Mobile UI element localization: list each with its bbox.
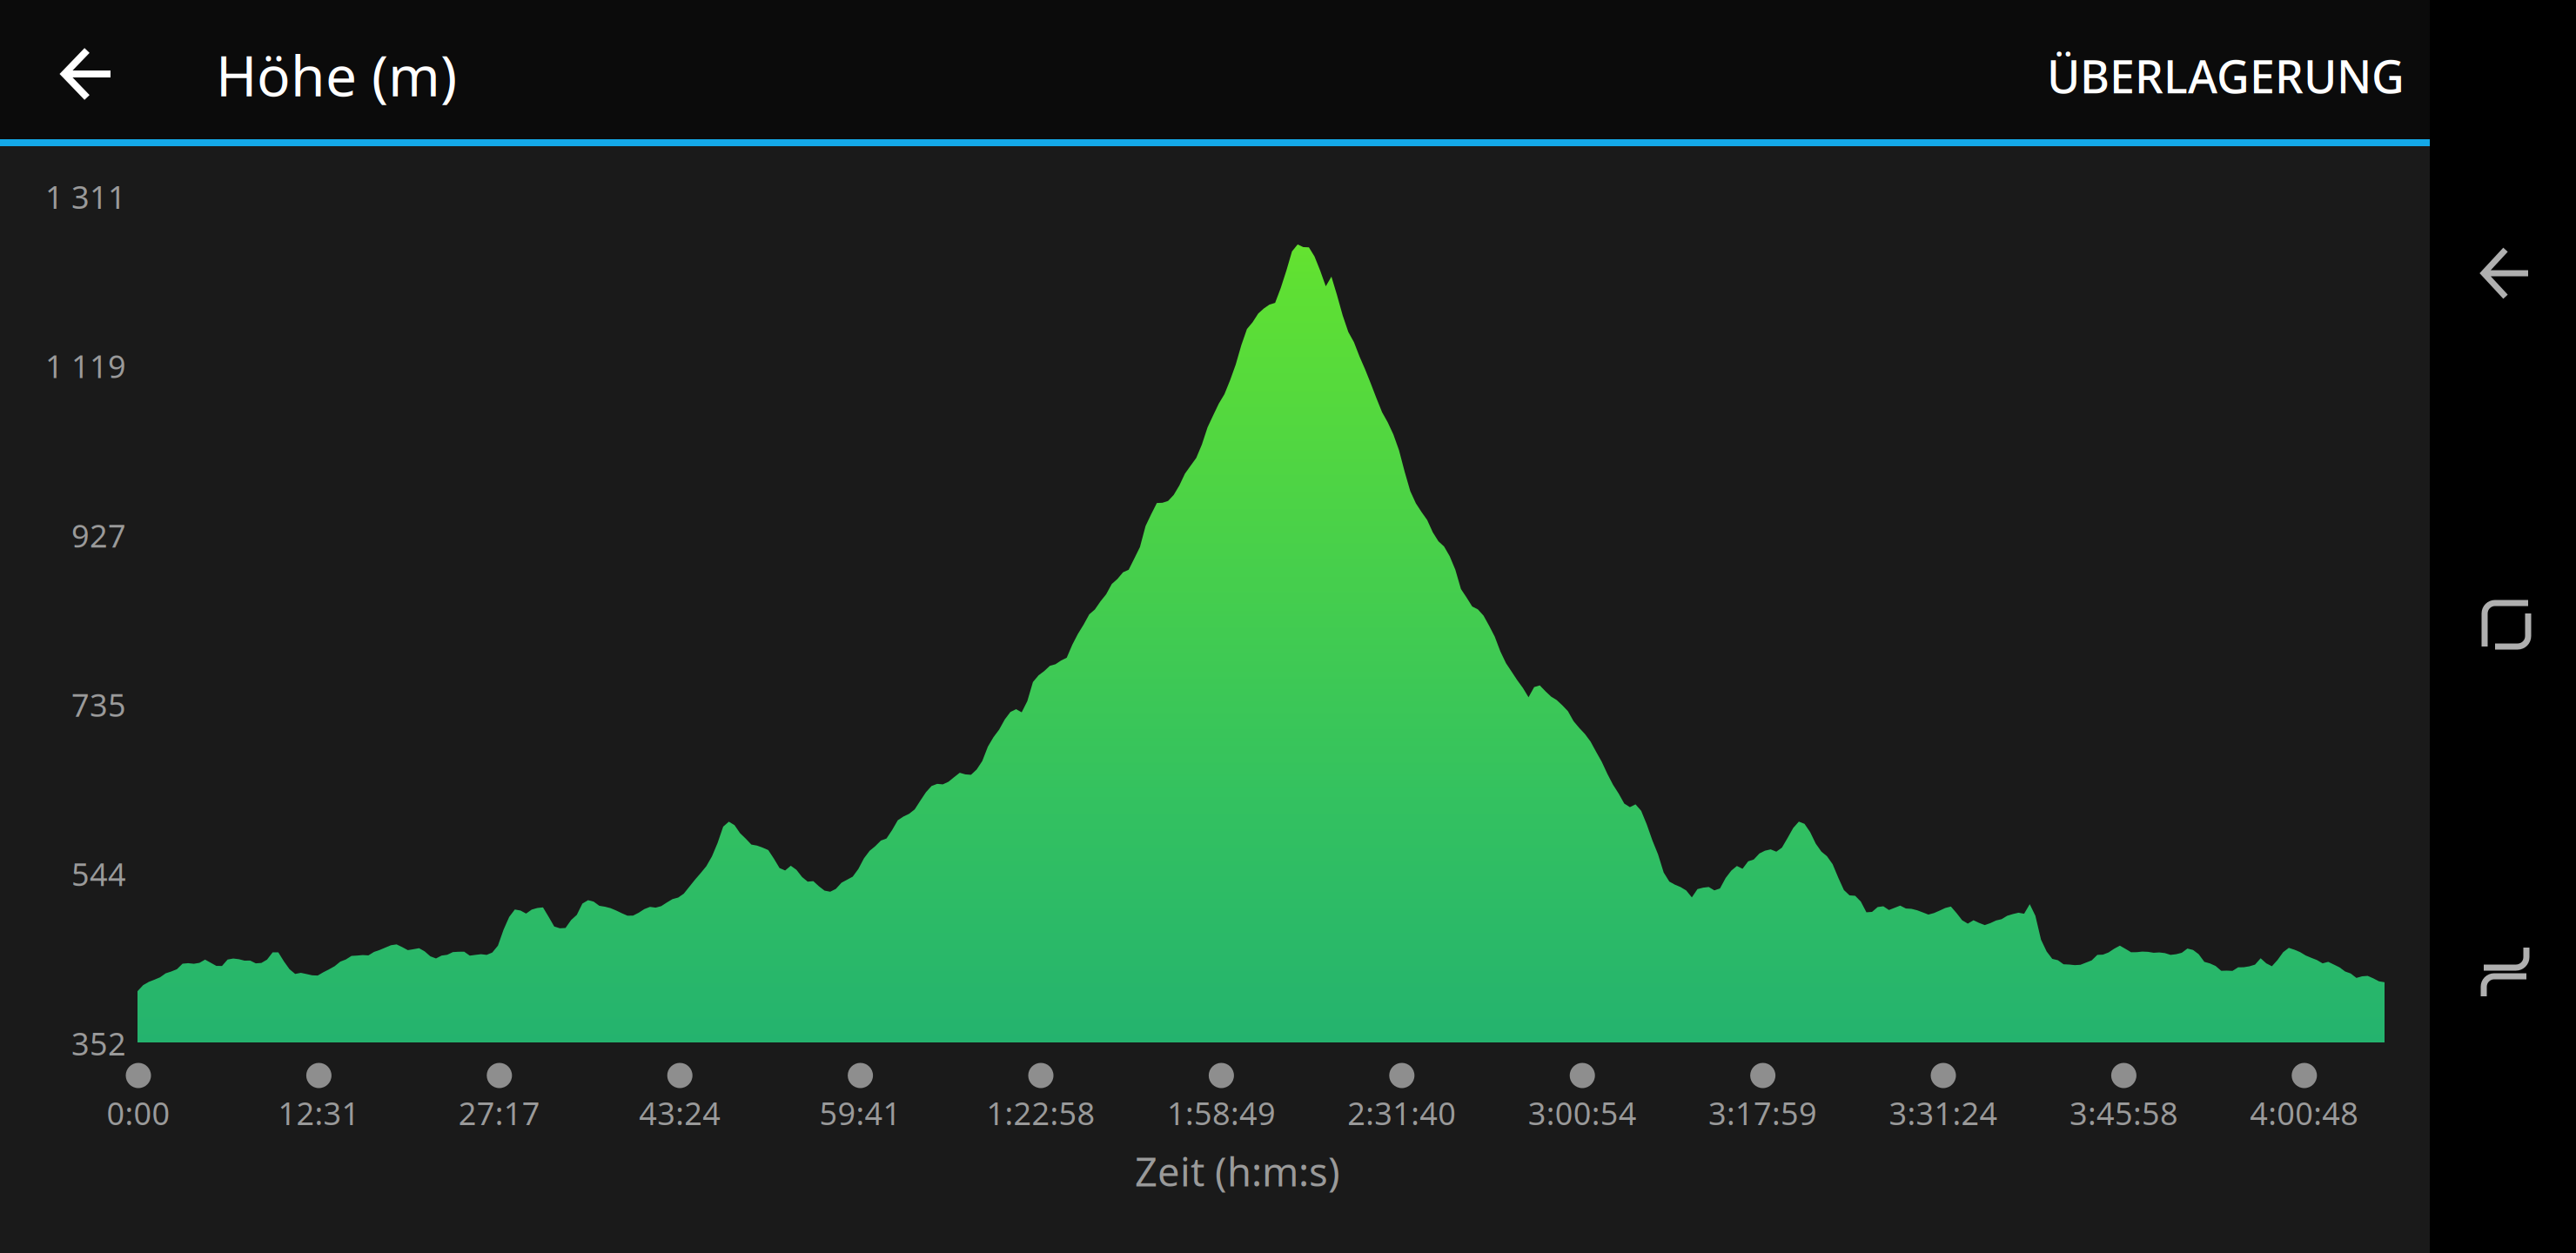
staticText: 12:31 xyxy=(278,1092,360,1134)
staticText: 927 xyxy=(71,515,126,556)
staticText: ÜBERLAGERUNG xyxy=(2047,46,2405,106)
staticText: 1:58:49 xyxy=(1167,1092,1276,1134)
staticText: 735 xyxy=(71,684,126,725)
staticText: 3:17:59 xyxy=(1708,1092,1817,1134)
staticText: 1 119 xyxy=(45,345,126,387)
staticText: 352 xyxy=(71,1023,126,1064)
button[interactable]: Recent apps xyxy=(2430,932,2576,1253)
button[interactable]: Back xyxy=(2430,232,2576,584)
staticText: 59:41 xyxy=(819,1092,901,1134)
button[interactable]: ÜBERLAGERUNG xyxy=(2012,0,2430,139)
staticText: 3:31:24 xyxy=(1889,1092,1998,1134)
staticText: 1 311 xyxy=(45,176,126,217)
staticText: 544 xyxy=(71,853,126,895)
staticText: 27:17 xyxy=(458,1092,540,1134)
button[interactable]: Back xyxy=(61,0,113,139)
staticText: 3:00:54 xyxy=(1528,1092,1637,1134)
staticText: 1:22:58 xyxy=(986,1092,1095,1134)
staticText: Zeit (h:m:s) xyxy=(1135,1145,1340,1197)
button[interactable]: Home xyxy=(2430,584,2576,932)
staticText: 0:00 xyxy=(107,1092,170,1134)
staticText: 2:31:40 xyxy=(1347,1092,1456,1134)
staticText: 3:45:58 xyxy=(2069,1092,2178,1134)
staticText: Höhe (m) xyxy=(216,38,457,112)
staticText: 43:24 xyxy=(639,1092,721,1134)
staticText: 4:00:48 xyxy=(2250,1092,2359,1134)
